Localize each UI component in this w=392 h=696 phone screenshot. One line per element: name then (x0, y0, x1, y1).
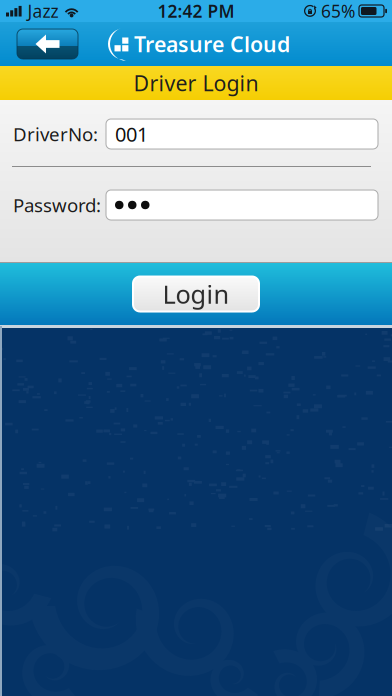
button[interactable]: 001 (106, 119, 378, 149)
staticText: 001 (115, 121, 148, 147)
staticText: 12:42 PM (157, 0, 234, 22)
staticText: Login (162, 277, 229, 311)
staticText: DriverNo: (13, 122, 98, 146)
button[interactable]: Login (133, 276, 259, 311)
staticText: Driver Login (133, 69, 258, 97)
staticText: Treasure Cloud (134, 30, 290, 58)
button[interactable]: Back (17, 29, 78, 59)
staticText: Jazz (28, 0, 59, 22)
staticText: Password: (13, 193, 101, 217)
staticText: 65% (321, 0, 355, 22)
button[interactable] (106, 190, 378, 220)
